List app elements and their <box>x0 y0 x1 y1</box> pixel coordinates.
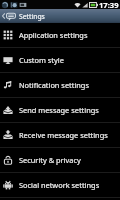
staticText: Security & privacy <box>19 155 81 165</box>
staticText: Notification settings <box>19 80 89 90</box>
staticText: 17:39 <box>99 0 119 9</box>
button[interactable]: Security & privacy <box>0 148 120 172</box>
staticText: Social network settings <box>19 180 100 190</box>
staticText: Receive message settings <box>19 130 108 140</box>
button[interactable]: Application settings <box>0 23 120 47</box>
staticText: Application settings <box>19 30 88 40</box>
button[interactable]: Custom style <box>0 48 120 72</box>
staticText: Custom style <box>19 55 64 65</box>
button[interactable]: Send message settings <box>0 98 120 122</box>
staticText: Settings <box>19 12 45 21</box>
button[interactable]: Notification settings <box>0 73 120 97</box>
button[interactable]: Social network settings <box>0 173 120 197</box>
button[interactable]: Receive message settings <box>0 123 120 147</box>
staticText: Send message settings <box>19 105 99 115</box>
button[interactable]: Navigate up <box>0 9 18 23</box>
